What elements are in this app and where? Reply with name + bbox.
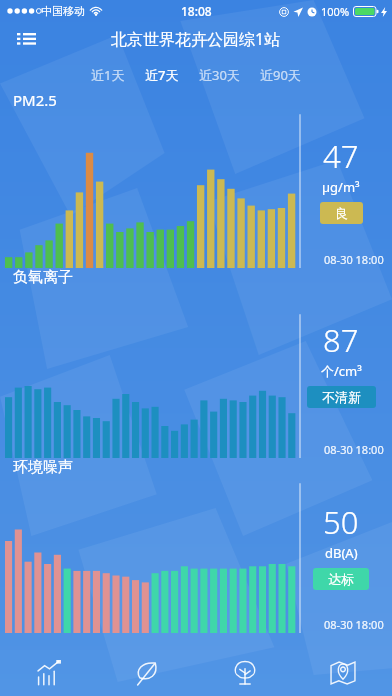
staticText: PM2.5: [13, 90, 57, 110]
staticText: 100%: [321, 4, 350, 19]
staticText: dB(A): [325, 544, 358, 562]
button[interactable]: Map: [294, 650, 392, 696]
staticText: 08-30 18:00: [324, 252, 384, 267]
button[interactable]: 达标: [313, 568, 369, 590]
staticText: 中国移动: [41, 4, 85, 18]
button[interactable]: Statistics: [0, 650, 98, 696]
button[interactable]: Air quality: [98, 650, 196, 696]
staticText: 08-30 18:00: [324, 442, 384, 457]
button[interactable]: 不清新: [307, 386, 376, 408]
staticText: 近7天: [145, 66, 179, 84]
staticText: 87: [323, 319, 359, 361]
staticText: 近1天: [91, 66, 125, 84]
staticText: 18:08: [181, 3, 212, 19]
button[interactable]: Menu: [6, 22, 46, 56]
staticText: 良: [335, 205, 348, 221]
staticText: 负氧离子: [13, 268, 73, 287]
staticText: 08-30 18:00: [324, 617, 384, 632]
staticText: 近30天: [199, 66, 240, 84]
staticText: 47: [323, 135, 359, 177]
staticText: 近90天: [260, 66, 301, 84]
button[interactable]: 近1天: [91, 66, 125, 84]
staticText: 50: [323, 501, 359, 543]
staticText: 达标: [328, 571, 354, 587]
staticText: 个/cm³: [321, 362, 362, 380]
button[interactable]: 良: [320, 202, 363, 224]
button[interactable]: 近90天: [260, 66, 301, 84]
staticText: 不清新: [322, 389, 361, 405]
staticText: 北京世界花卉公园综1站: [111, 28, 281, 50]
staticText: µg/m³: [322, 178, 360, 196]
button[interactable]: 近7天: [145, 66, 179, 84]
button[interactable]: Parks: [196, 650, 294, 696]
button[interactable]: 近30天: [199, 66, 240, 84]
staticText: 环境噪声: [13, 458, 73, 477]
